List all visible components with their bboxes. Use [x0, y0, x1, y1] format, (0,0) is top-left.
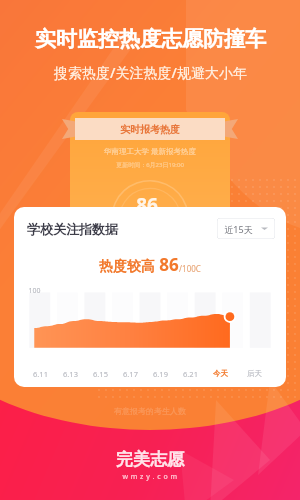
staticText: 近15天 — [224, 223, 253, 235]
staticText: 86 — [136, 192, 158, 218]
staticText: 华南理工大学 最新报考热度 — [104, 146, 196, 156]
staticText: 6.21 — [183, 369, 198, 379]
staticText: 实时监控热度志愿防撞车 — [35, 26, 266, 52]
staticText: 86 — [159, 253, 179, 276]
staticText: /100C — [179, 263, 201, 274]
button[interactable]: 近15天 — [217, 218, 275, 239]
staticText: 更新时间：6月23日19:00 — [116, 161, 184, 169]
staticText: 实时报考热度 — [120, 123, 180, 136]
staticText: 学校关注指数据 — [27, 221, 118, 237]
staticText: 有意报考的考生人数 — [114, 406, 186, 416]
staticText: 后天 — [247, 369, 262, 378]
button[interactable]: 学校关注指数据 — [14, 207, 286, 387]
staticText: 热度较高 — [99, 258, 155, 276]
staticText: 6.17 — [123, 369, 138, 379]
staticText: 6.19 — [153, 369, 168, 379]
staticText: w m z y . c o m — [122, 472, 178, 482]
staticText: 6.11 — [33, 369, 48, 379]
staticText: C — [159, 204, 165, 216]
staticText: 6.15 — [93, 369, 108, 379]
staticText: 完美志愿 — [116, 449, 184, 470]
staticText: 今天 — [213, 369, 228, 378]
staticText: 6.13 — [63, 369, 78, 379]
staticText: 搜索热度/关注热度/规避大小年 — [54, 63, 247, 82]
staticText: 100 — [28, 286, 41, 296]
